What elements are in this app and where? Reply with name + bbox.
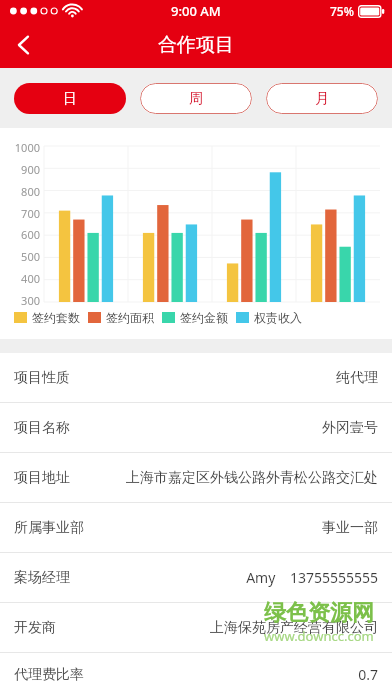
- staticText: 外冈壹号: [322, 419, 378, 437]
- button[interactable]: Back: [0, 22, 48, 68]
- staticText: 纯代理: [336, 369, 378, 387]
- staticText: 项目名称: [14, 419, 70, 437]
- staticText: 月: [315, 90, 329, 108]
- staticText: 500: [0, 249, 40, 264]
- button[interactable]: 日: [14, 83, 126, 114]
- staticText: 权责收入: [254, 310, 302, 325]
- staticText: 上海保苑房产经营有限公司: [210, 619, 378, 637]
- staticText: 所属事业部: [14, 519, 84, 537]
- staticText: www.downcc.com: [264, 627, 374, 645]
- staticText: 绿色资源网: [264, 599, 374, 627]
- staticText: 周: [189, 90, 203, 108]
- staticText: 签约金额: [180, 310, 228, 325]
- staticText: 1000: [0, 140, 40, 155]
- staticText: 开发商: [14, 619, 56, 637]
- staticText: 项目性质: [14, 369, 70, 387]
- staticText: 9:00 AM: [171, 2, 221, 20]
- staticText: 700: [0, 206, 40, 221]
- staticText: 签约套数: [32, 310, 80, 325]
- button[interactable]: 项目地址: [0, 453, 392, 503]
- staticText: 0.7: [358, 665, 378, 684]
- button[interactable]: 项目名称: [0, 403, 392, 453]
- button[interactable]: 周: [140, 83, 252, 114]
- button[interactable]: 代理费比率: [0, 653, 392, 696]
- staticText: 75%: [330, 3, 354, 19]
- staticText: 400: [0, 271, 40, 286]
- button[interactable]: 开发商: [0, 603, 392, 653]
- staticText: 代理费比率: [14, 666, 84, 684]
- button[interactable]: 月: [266, 83, 378, 114]
- button[interactable]: 项目性质: [0, 353, 392, 403]
- staticText: Amy 13755555555: [246, 568, 378, 587]
- button[interactable]: 案场经理: [0, 553, 392, 603]
- button[interactable]: 所属事业部: [0, 503, 392, 553]
- staticText: 900: [0, 162, 40, 177]
- staticText: 案场经理: [14, 569, 70, 587]
- staticText: 合作项目: [158, 33, 234, 57]
- staticText: 600: [0, 227, 40, 242]
- staticText: 签约面积: [106, 310, 154, 325]
- staticText: 项目地址: [14, 469, 70, 487]
- staticText: 事业一部: [322, 519, 378, 537]
- staticText: 300: [0, 293, 40, 308]
- staticText: 800: [0, 184, 40, 199]
- staticText: 上海市嘉定区外钱公路外青松公路交汇处: [126, 469, 378, 487]
- staticText: 日: [63, 90, 77, 108]
